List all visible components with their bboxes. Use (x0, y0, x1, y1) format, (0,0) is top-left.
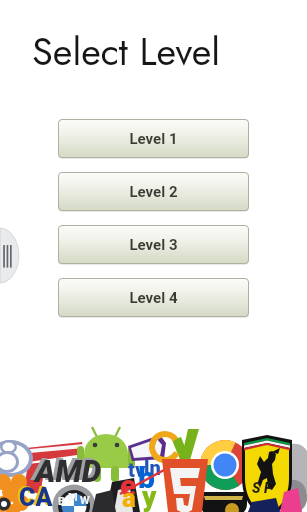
staticText: AMD (32, 451, 99, 487)
staticText: y (142, 480, 157, 512)
button[interactable]: Level 4 (58, 278, 249, 317)
staticText: e (120, 468, 137, 503)
staticText: AMD (35, 453, 102, 489)
staticText: B (58, 495, 66, 508)
staticText: Level 2 (129, 183, 178, 201)
staticText: b (138, 460, 155, 495)
staticText: Level 1 (129, 130, 178, 148)
staticText: W (80, 494, 90, 507)
staticText: ln (144, 456, 161, 479)
button[interactable]: Open navigation drawer (0, 228, 19, 283)
button[interactable]: Level 2 (58, 172, 249, 211)
staticText: tv (128, 458, 146, 481)
staticText: M (68, 491, 78, 504)
staticText: CA (19, 483, 53, 512)
staticText: S F (252, 480, 272, 496)
button[interactable]: Level 3 (58, 225, 249, 264)
staticText: Level 4 (129, 289, 178, 307)
staticText: a (122, 483, 136, 512)
button[interactable]: Level 1 (58, 119, 249, 158)
staticText: Select Level (32, 24, 220, 79)
staticText: Level 3 (129, 236, 178, 254)
staticText: CA (17, 482, 51, 511)
